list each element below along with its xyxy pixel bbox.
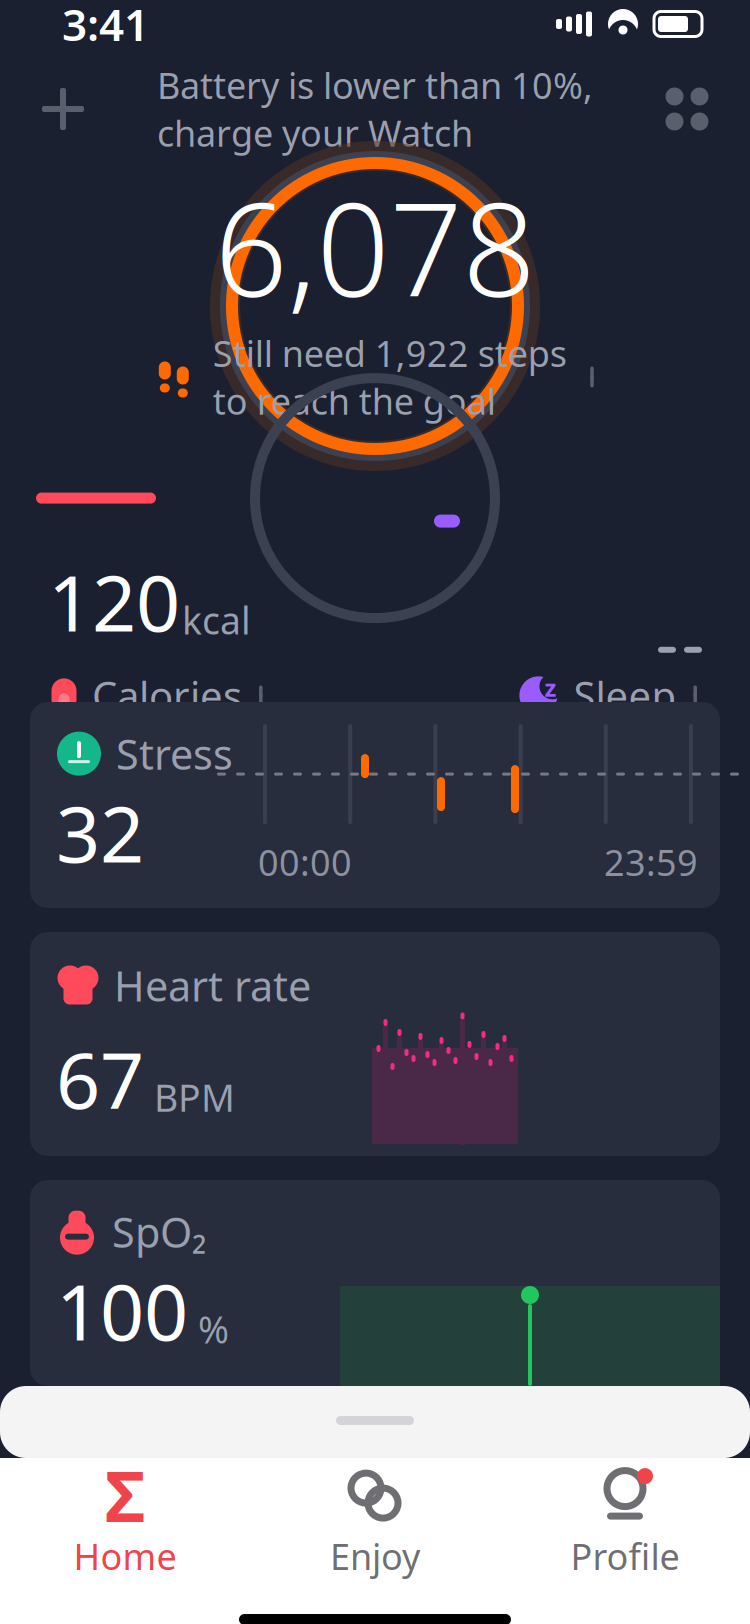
- button[interactable]: Σ: [0, 1458, 250, 1590]
- staticText: 32: [56, 781, 144, 884]
- staticText: BPM: [154, 1072, 235, 1122]
- staticText: Heart rate: [114, 958, 311, 1013]
- button[interactable]: Enjoy: [250, 1458, 500, 1590]
- staticText: Home: [73, 1532, 176, 1580]
- button[interactable]: 120: [48, 550, 268, 722]
- staticText: 67: [56, 1027, 144, 1130]
- staticText: 3:41: [62, 0, 149, 53]
- staticText: Sleep: [573, 669, 676, 722]
- button[interactable]: Add: [28, 74, 98, 144]
- staticText: Battery is lower than 10%, charge your W…: [157, 61, 593, 157]
- button[interactable]: Still need 1,922 steps to reach the goal: [151, 332, 599, 422]
- button[interactable]: Stress: [30, 702, 720, 908]
- staticText: Stress: [116, 726, 233, 781]
- staticText: 00:00: [258, 838, 352, 886]
- staticText: SpO₂: [112, 1204, 206, 1259]
- staticText: Still need 1,922 steps to reach the goal: [213, 329, 567, 425]
- staticText: Profile: [570, 1532, 679, 1580]
- staticText: 100: [56, 1259, 188, 1362]
- staticText: z: [544, 671, 556, 703]
- button[interactable]: Heart rate: [30, 932, 720, 1156]
- staticText: Calories: [92, 669, 242, 722]
- button[interactable]: SpO₂: [30, 1180, 720, 1386]
- staticText: 23:59: [604, 838, 698, 886]
- staticText: Σ: [105, 1449, 145, 1541]
- staticText: 120: [48, 550, 180, 653]
- staticText: Enjoy: [330, 1532, 420, 1580]
- staticText: 6,078: [214, 162, 535, 332]
- staticText: %: [198, 1304, 229, 1354]
- button[interactable]: Profile: [500, 1458, 750, 1590]
- button[interactable]: z: [515, 589, 702, 722]
- button[interactable]: Widgets: [652, 74, 722, 144]
- staticText: kcal: [182, 595, 251, 645]
